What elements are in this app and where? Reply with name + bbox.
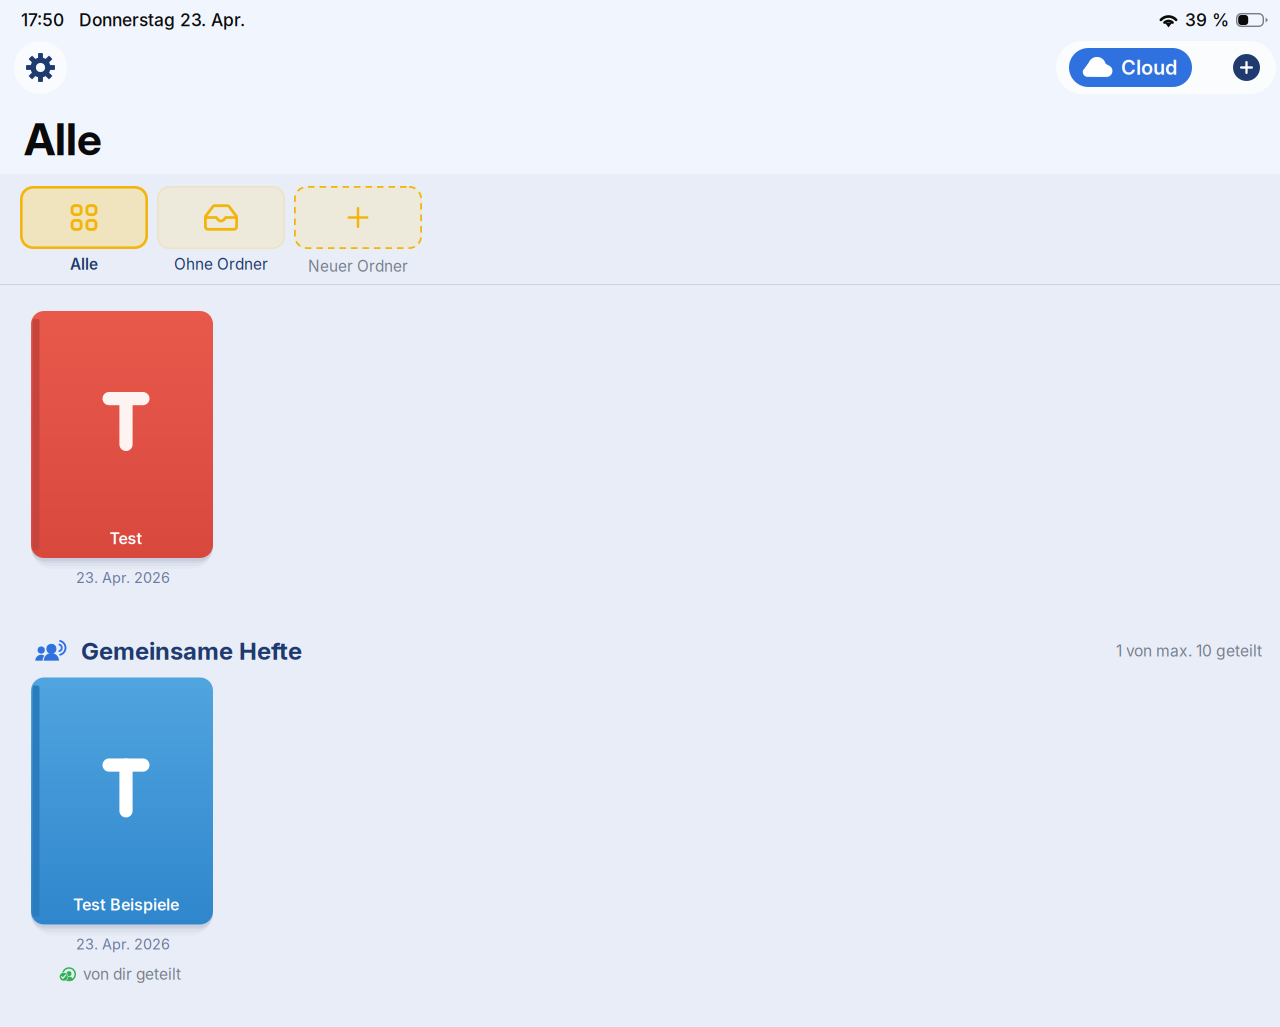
- staticText: 23. Apr. 2026: [76, 569, 170, 586]
- staticText: von dir geteilt: [83, 965, 181, 984]
- button[interactable]: Neu: [1233, 54, 1260, 81]
- staticText: 39 %: [1185, 9, 1229, 30]
- button[interactable]: Neuer Ordner: [294, 186, 422, 276]
- staticText: 1 von max. 10 geteilt: [1116, 641, 1262, 660]
- button[interactable]: Einstellungen: [14, 41, 67, 94]
- staticText: Alle: [70, 255, 98, 274]
- staticText: Test: [109, 529, 142, 548]
- button[interactable]: Test Beispiele: [33, 677, 215, 984]
- staticText: Cloud: [1121, 55, 1177, 80]
- staticText: Neuer Ordner: [308, 257, 408, 276]
- staticText: Gemeinsame Hefte: [81, 636, 302, 665]
- button[interactable]: Test: [33, 311, 215, 586]
- staticText: Ohne Ordner: [174, 255, 268, 274]
- staticText: Alle: [24, 112, 102, 166]
- staticText: 23. Apr. 2026: [76, 935, 170, 953]
- button[interactable]: Ohne Ordner: [157, 186, 285, 274]
- button[interactable]: Cloud: [1069, 48, 1192, 87]
- staticText: Test Beispiele: [73, 895, 179, 914]
- button[interactable]: Alle: [20, 186, 148, 274]
- staticText: 17:50: [21, 9, 64, 30]
- staticText: Donnerstag 23. Apr.: [79, 9, 245, 30]
